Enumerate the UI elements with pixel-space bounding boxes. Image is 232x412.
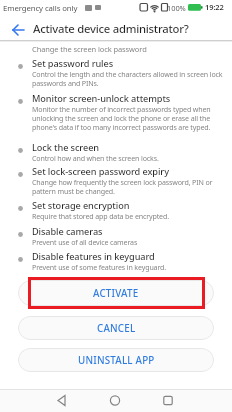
- staticText: Monitor the number of incorrect password…: [32, 104, 211, 132]
- staticText: 100%: [167, 3, 186, 13]
- button[interactable]: UNINSTALL APP: [18, 348, 214, 372]
- staticText: Activate device administrator?: [33, 21, 189, 36]
- button[interactable]: [156, 389, 180, 412]
- staticText: Disable features in keyguard: [32, 250, 155, 263]
- staticText: Disable cameras: [32, 225, 103, 238]
- staticText: Control the length and the characters al…: [32, 69, 223, 88]
- button[interactable]: ACTIVATE: [18, 280, 214, 306]
- staticText: Set storage encryption: [32, 199, 130, 212]
- staticText: Emergency calls only: [3, 3, 78, 14]
- staticText: Prevent use of some features in keyguard…: [32, 262, 167, 272]
- staticText: Set lock-screen password expiry: [32, 165, 169, 178]
- staticText: Require that stored app data be encrypte…: [32, 211, 169, 221]
- staticText: UNINSTALL APP: [78, 354, 155, 367]
- staticText: Change how frequently the screen lock pa…: [32, 177, 213, 196]
- button[interactable]: [6, 18, 30, 42]
- staticText: Control how and when the screen locks.: [32, 153, 159, 163]
- staticText: Prevent use of all device cameras: [32, 237, 138, 247]
- button[interactable]: [50, 389, 74, 412]
- button[interactable]: [103, 389, 127, 412]
- staticText: 19:22: [205, 2, 224, 12]
- staticText: Set password rules: [32, 57, 113, 70]
- staticText: ACTIVATE: [93, 287, 139, 300]
- staticText: Lock the screen: [32, 141, 99, 154]
- button[interactable]: CANCEL: [18, 316, 214, 340]
- staticText: Change the screen lock password: [32, 44, 147, 54]
- staticText: CANCEL: [97, 322, 136, 335]
- staticText: Monitor screen-unlock attempts: [32, 92, 171, 105]
